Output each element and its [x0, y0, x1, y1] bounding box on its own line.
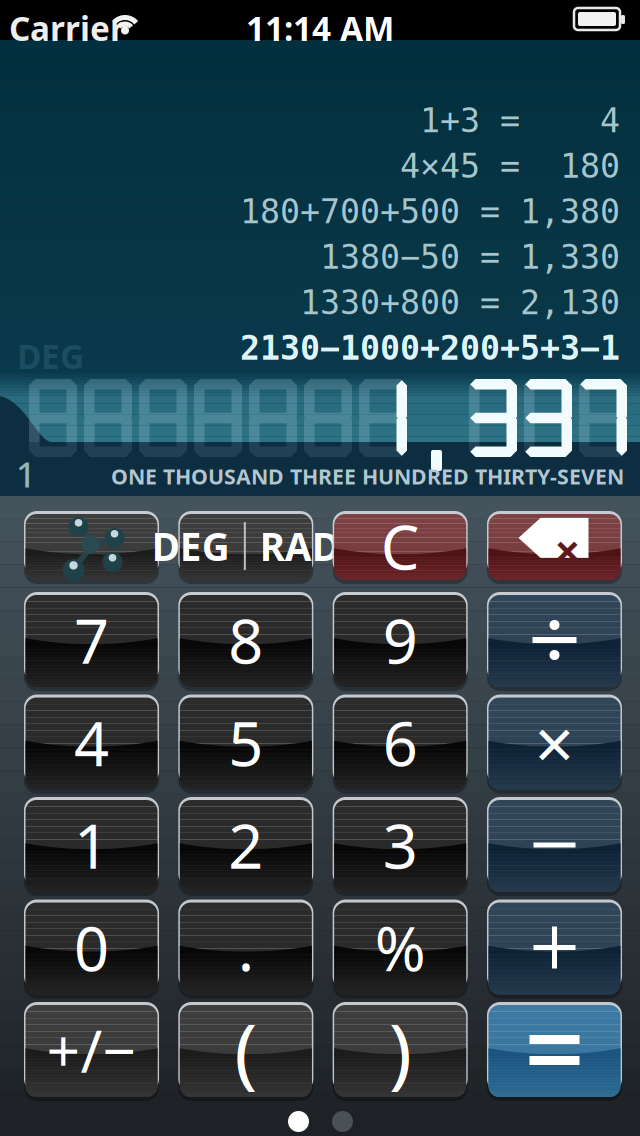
staticText: C — [381, 505, 420, 587]
button[interactable]: ( — [178, 1002, 313, 1098]
staticText: 2 — [228, 804, 263, 886]
staticText: 7 — [74, 599, 109, 681]
staticText: 5 — [228, 702, 263, 783]
staticText: 2130−1000+200+5+3−1 — [240, 329, 620, 367]
staticText: DEG — [17, 334, 84, 378]
button[interactable]: Delete — [487, 511, 622, 581]
button[interactable]: 4 — [24, 694, 159, 790]
button[interactable]: Degrees or radians — [178, 511, 313, 581]
staticText: 1+3 = 4 — [420, 102, 620, 140]
staticText: 1380−50 = 1,330 — [320, 238, 620, 276]
button[interactable]: 7 — [24, 592, 159, 688]
staticText: 4×45 = 180 — [400, 147, 620, 185]
button[interactable]: 2 — [178, 797, 313, 893]
button[interactable]: 8 — [178, 592, 313, 688]
button[interactable]: % — [333, 899, 468, 995]
staticText: DEG — [152, 520, 230, 572]
button[interactable]: − — [487, 797, 622, 893]
button[interactable]: 5 — [178, 694, 313, 790]
staticText: 1 — [16, 451, 36, 497]
button[interactable]: × — [487, 694, 622, 790]
button[interactable]: 1 — [24, 797, 159, 893]
staticText: 4 — [74, 702, 109, 783]
staticText: 180+700+500 = 1,380 — [240, 193, 620, 231]
button[interactable]: Scientific — [24, 511, 159, 581]
staticText: +/− — [46, 1011, 136, 1089]
staticText: RAD — [260, 520, 340, 572]
button[interactable]: ) — [333, 1002, 468, 1098]
button[interactable]: +/− — [24, 1002, 159, 1098]
staticText: Carrier — [9, 6, 125, 50]
button[interactable]: + — [487, 899, 622, 995]
staticText: 9 — [383, 599, 418, 681]
button[interactable]: = — [487, 1002, 622, 1098]
button[interactable]: . — [178, 899, 313, 995]
staticText: 3 — [383, 804, 418, 886]
staticText: % — [375, 907, 426, 988]
staticText: 1 — [74, 804, 109, 886]
staticText: 6 — [383, 702, 418, 783]
staticText: . — [238, 907, 254, 988]
button[interactable]: 6 — [333, 694, 468, 790]
button[interactable]: 9 — [333, 592, 468, 688]
staticText: 11:14 AM — [246, 6, 394, 50]
staticText: × — [534, 696, 574, 789]
button[interactable]: 3 — [333, 797, 468, 893]
staticText: × — [554, 520, 580, 580]
staticText: 0 — [74, 907, 109, 988]
staticText: 8 — [228, 599, 263, 681]
button[interactable]: 0 — [24, 899, 159, 995]
staticText: 1330+800 = 2,130 — [300, 284, 620, 322]
button[interactable]: C — [333, 511, 468, 581]
button[interactable]: ÷ — [487, 592, 622, 688]
staticText: ( — [234, 999, 257, 1101]
staticText: ONE THOUSAND THREE HUNDRED THIRTY-SEVEN — [111, 462, 624, 490]
staticText: ) — [389, 999, 412, 1101]
